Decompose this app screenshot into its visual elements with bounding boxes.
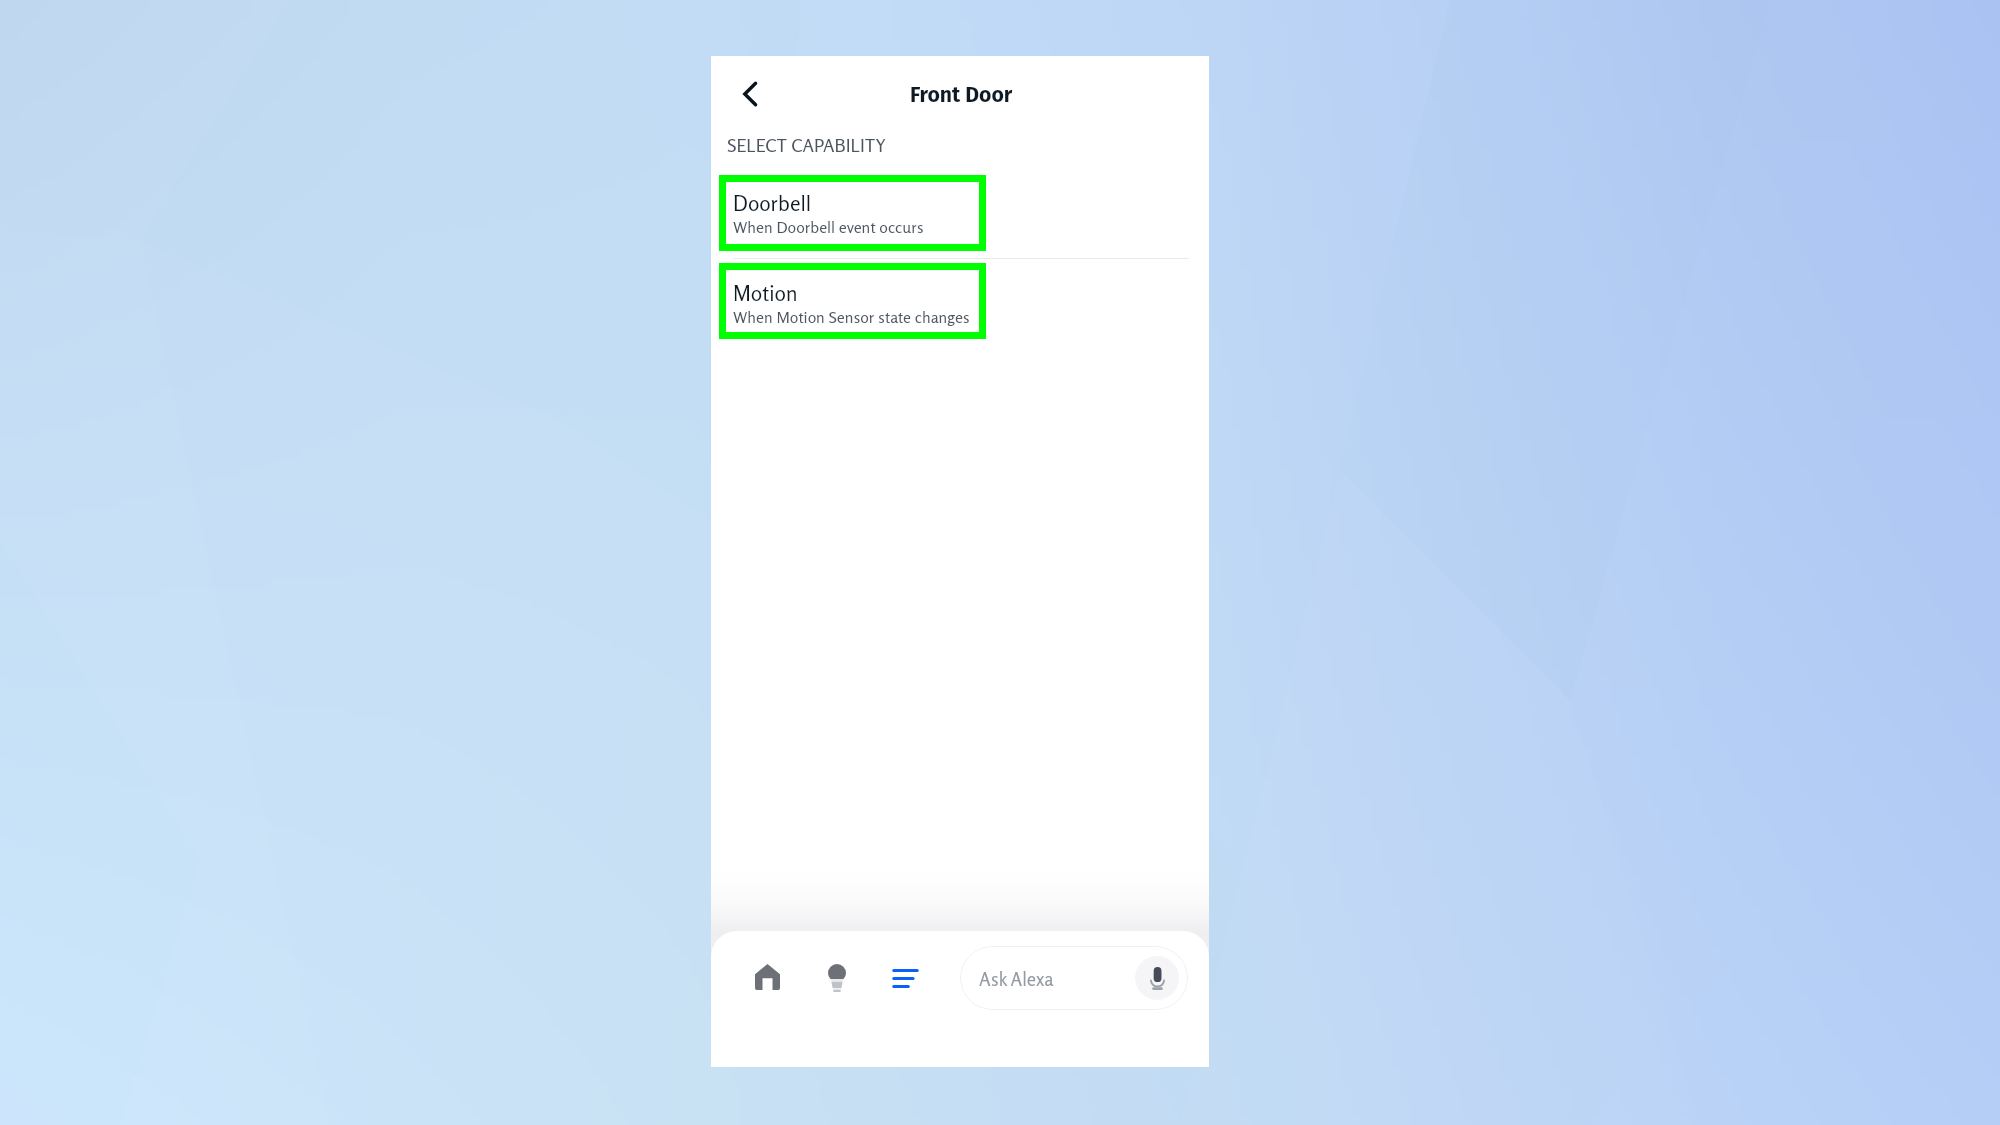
staticText: Motion (733, 280, 798, 306)
staticText: Ask Alexa (979, 968, 1054, 990)
button[interactable]: Doorbell (719, 175, 986, 251)
staticText: When Doorbell event occurs (733, 217, 924, 236)
staticText: When Motion Sensor state changes (733, 307, 970, 326)
staticText: Doorbell (733, 190, 812, 216)
button[interactable]: Voice (1135, 956, 1179, 1000)
button[interactable]: Devices (815, 956, 859, 1000)
button[interactable]: Activity (883, 956, 927, 1000)
button[interactable]: Home (745, 955, 789, 999)
staticText: Front Door (910, 82, 1013, 107)
button[interactable]: Motion (719, 263, 986, 339)
button[interactable]: Ask Alexa (960, 946, 1188, 1010)
staticText: SELECT CAPABILITY (727, 134, 886, 156)
button[interactable]: Back (737, 70, 785, 118)
